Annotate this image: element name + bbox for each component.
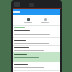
button[interactable]	[37, 17, 57, 26]
button[interactable]	[13, 62, 60, 72]
button[interactable]	[17, 17, 37, 26]
button[interactable]	[13, 29, 60, 38]
button[interactable]	[13, 46, 60, 53]
button[interactable]	[13, 9, 60, 15]
button[interactable]	[13, 52, 60, 62]
button[interactable]	[13, 37, 60, 46]
